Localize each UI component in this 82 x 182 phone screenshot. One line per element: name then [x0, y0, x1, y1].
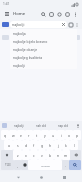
button[interactable]: Recent apps	[59, 172, 69, 182]
staticText: najbolji	[14, 124, 24, 128]
button[interactable]: najbolje bijelo brasno	[10, 37, 77, 45]
button[interactable]: Menu	[74, 22, 80, 28]
staticText: z	[17, 153, 19, 158]
staticText: 1:41	[3, 2, 10, 6]
button[interactable]: h	[46, 140, 54, 150]
staticText: c	[33, 153, 35, 158]
button[interactable]: More options	[71, 10, 79, 18]
button[interactable]: r	[25, 130, 33, 140]
staticText: w	[12, 133, 15, 138]
staticText: n	[57, 153, 60, 158]
button[interactable]: l	[70, 140, 78, 150]
staticText: .	[65, 163, 66, 168]
button[interactable]: Backspace	[70, 150, 81, 160]
button[interactable]: hrvatski	[28, 160, 62, 170]
staticText: v	[41, 153, 43, 158]
button[interactable]: s	[13, 140, 22, 150]
staticText: najbolje bijelo brasno	[13, 39, 48, 44]
button[interactable]: Comma	[14, 160, 21, 170]
button[interactable]: Search	[39, 10, 47, 18]
button[interactable]: a	[4, 140, 13, 150]
staticText: hrvatski	[41, 164, 50, 167]
button[interactable]: p	[73, 130, 81, 140]
button[interactable]: Tabs	[63, 10, 71, 18]
staticText: najbolji	[13, 63, 25, 68]
staticText: o	[68, 133, 71, 138]
button[interactable]: Tab	[2, 22, 9, 27]
button[interactable]: n	[54, 150, 62, 160]
button[interactable]: Voice input	[74, 122, 81, 129]
button[interactable]: najbolja	[10, 29, 77, 37]
staticText: najbolje okanje	[13, 47, 38, 52]
button[interactable]: t	[33, 130, 41, 140]
staticText: x	[25, 153, 27, 158]
button[interactable]: w	[9, 130, 17, 140]
button[interactable]: ?123	[1, 160, 14, 170]
staticText: b	[49, 153, 52, 158]
button[interactable]: najbolji	[8, 121, 30, 130]
button[interactable]: Emoji	[21, 160, 28, 170]
staticText: nap old	[58, 124, 68, 128]
staticText: p	[76, 133, 79, 138]
button[interactable]: d	[22, 140, 30, 150]
button[interactable]: Back	[13, 172, 23, 182]
button[interactable]: najbolje okanje	[10, 45, 77, 53]
staticText: r	[28, 133, 30, 138]
button[interactable]: g	[38, 140, 46, 150]
staticText: d	[25, 143, 28, 148]
staticText: j	[58, 143, 59, 148]
button[interactable]: u	[49, 130, 57, 140]
button[interactable]: v	[38, 150, 46, 160]
staticText: g	[41, 143, 44, 148]
button[interactable]: Add	[47, 10, 55, 18]
button[interactable]: Search	[69, 160, 81, 170]
button[interactable]: Shift	[1, 150, 13, 160]
staticText: s	[17, 143, 19, 148]
button[interactable]: najbolji	[10, 61, 77, 69]
staticText: Home	[13, 11, 26, 17]
staticText: l	[74, 143, 75, 148]
staticText: i	[61, 133, 62, 138]
button[interactable]: Home	[36, 172, 46, 182]
staticText: t	[36, 133, 38, 138]
button[interactable]: nah old	[30, 121, 52, 130]
staticText: u	[52, 133, 55, 138]
button[interactable]: najboljeg kvaliteta	[10, 53, 77, 61]
button[interactable]: Bookmarks	[3, 10, 11, 18]
button[interactable]: y	[41, 130, 49, 140]
button[interactable]: o	[65, 130, 73, 140]
staticText: najboljeg kvaliteta	[13, 55, 43, 60]
staticText: m	[64, 153, 68, 158]
staticText: q	[4, 133, 7, 138]
staticText: nah old	[36, 124, 46, 128]
button[interactable]: Sync	[55, 10, 63, 18]
button[interactable]: b	[46, 150, 54, 160]
button[interactable]: i	[57, 130, 65, 140]
staticText: f	[33, 143, 35, 148]
button[interactable]: z	[13, 150, 22, 160]
button[interactable]: najbolji	[10, 21, 67, 28]
staticText: ,	[17, 163, 18, 168]
button[interactable]: f	[30, 140, 38, 150]
staticText: ?123	[5, 163, 11, 167]
staticText: e	[20, 133, 22, 138]
staticText: a	[8, 143, 10, 148]
staticText: najbolji	[12, 22, 25, 27]
staticText: k	[65, 143, 67, 148]
button[interactable]: nap old	[52, 121, 74, 130]
staticText: h	[49, 143, 52, 148]
staticText: najbolja	[13, 31, 26, 36]
button[interactable]: k	[62, 140, 70, 150]
button[interactable]: j	[54, 140, 62, 150]
button[interactable]: e	[17, 130, 25, 140]
button[interactable]: c	[30, 150, 38, 160]
staticText: y	[44, 133, 46, 138]
button[interactable]: Google	[1, 122, 8, 129]
button[interactable]: m	[62, 150, 70, 160]
button[interactable]: Tab switcher	[68, 22, 74, 28]
button[interactable]: x	[22, 150, 30, 160]
button[interactable]: q	[1, 130, 9, 140]
